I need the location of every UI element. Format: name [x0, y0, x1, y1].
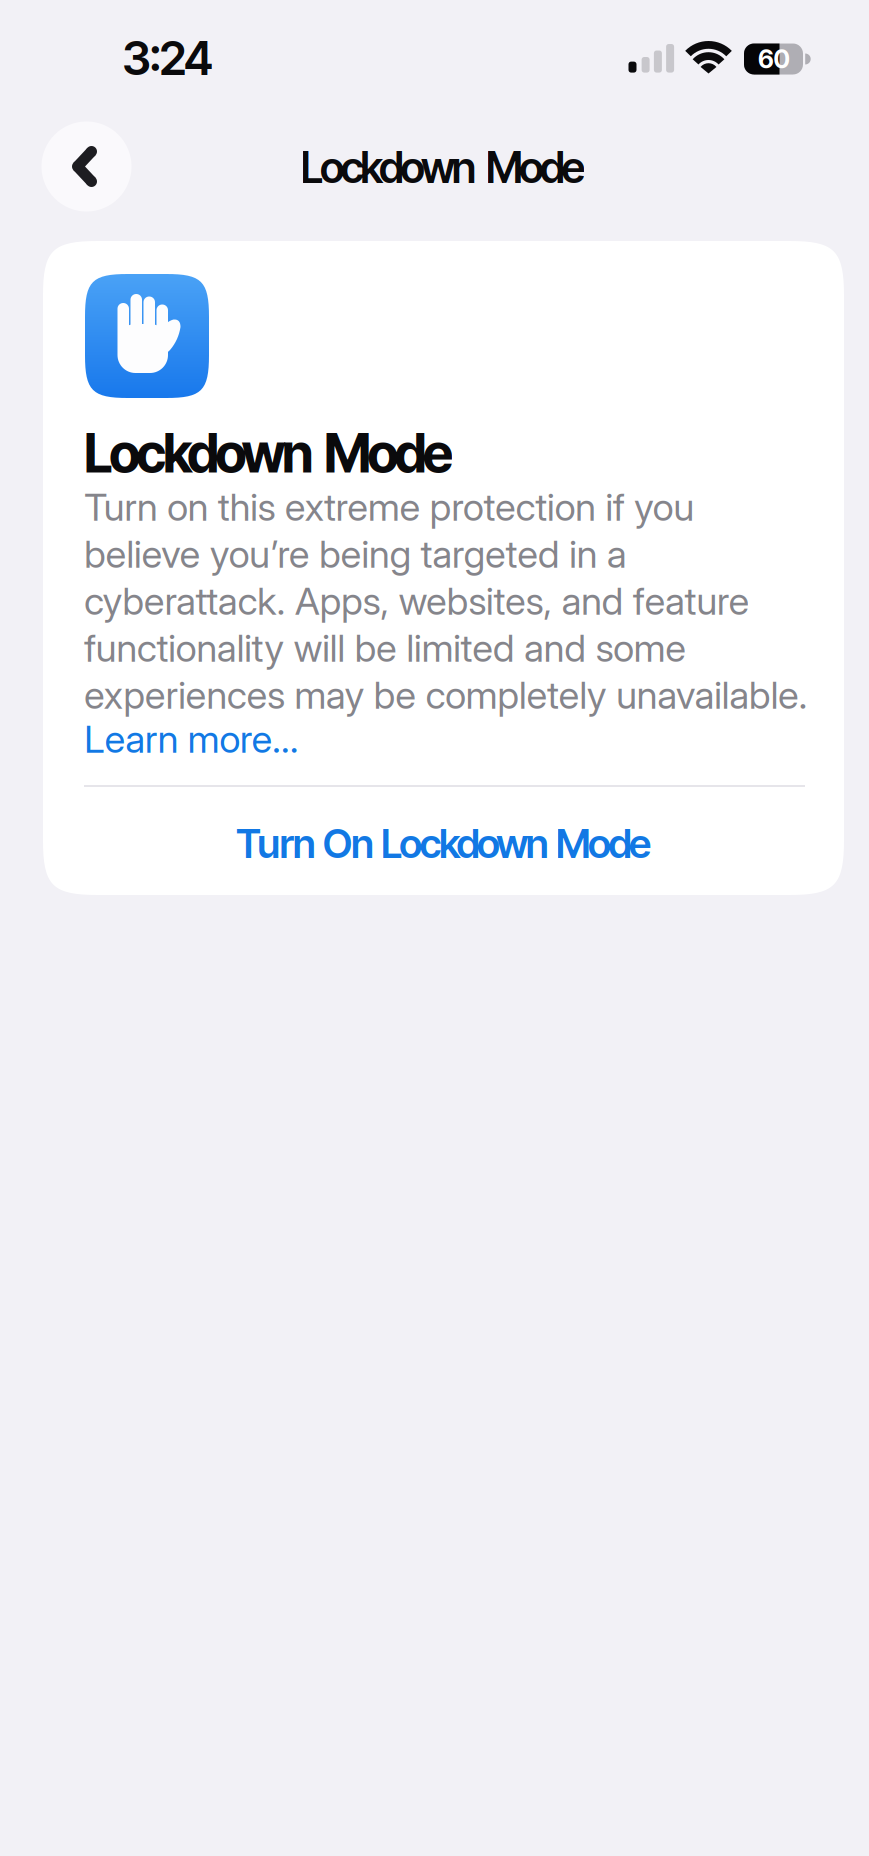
staticText: Learn more…: [84, 716, 299, 762]
staticText: Lockdown: [84, 421, 314, 485]
button[interactable]: Turn: [43, 786, 844, 895]
staticText: Mode: [324, 421, 453, 485]
staticText: Mode: [486, 142, 585, 193]
staticText: On: [323, 819, 374, 868]
staticText: Turn: [236, 819, 316, 868]
staticText: 3:24: [122, 30, 213, 86]
staticText: Mode: [556, 819, 651, 868]
button[interactable]: Back: [41, 121, 131, 211]
staticText: Turn on this extreme protection if you b…: [84, 484, 808, 718]
staticText: 60: [758, 44, 790, 74]
staticText: Lockdown: [300, 142, 476, 193]
button[interactable]: Learn more…: [84, 716, 844, 762]
staticText: Lockdown: [381, 819, 549, 868]
